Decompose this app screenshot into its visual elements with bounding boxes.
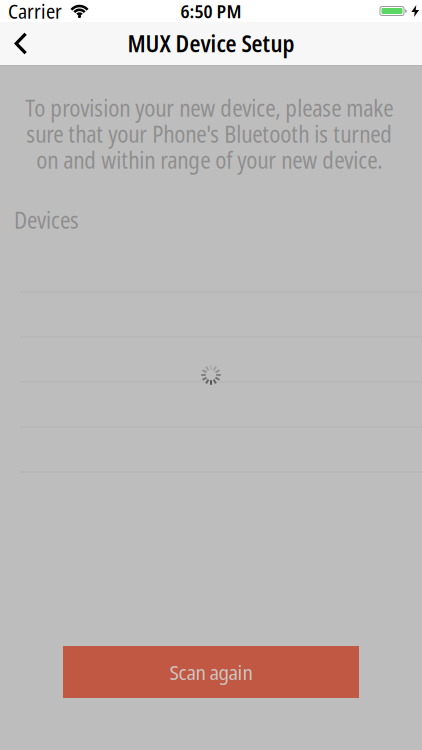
button[interactable]: Scan again [63,646,359,698]
staticText: To provision your new device, please mak… [25,95,393,173]
staticText: Scan again [169,658,252,686]
button[interactable]: Back [0,32,37,55]
staticText: Carrier [8,0,62,25]
staticText: Devices [14,205,79,235]
staticText: 6:50 PM [180,0,241,24]
staticText: MUX Device Setup [127,28,294,59]
